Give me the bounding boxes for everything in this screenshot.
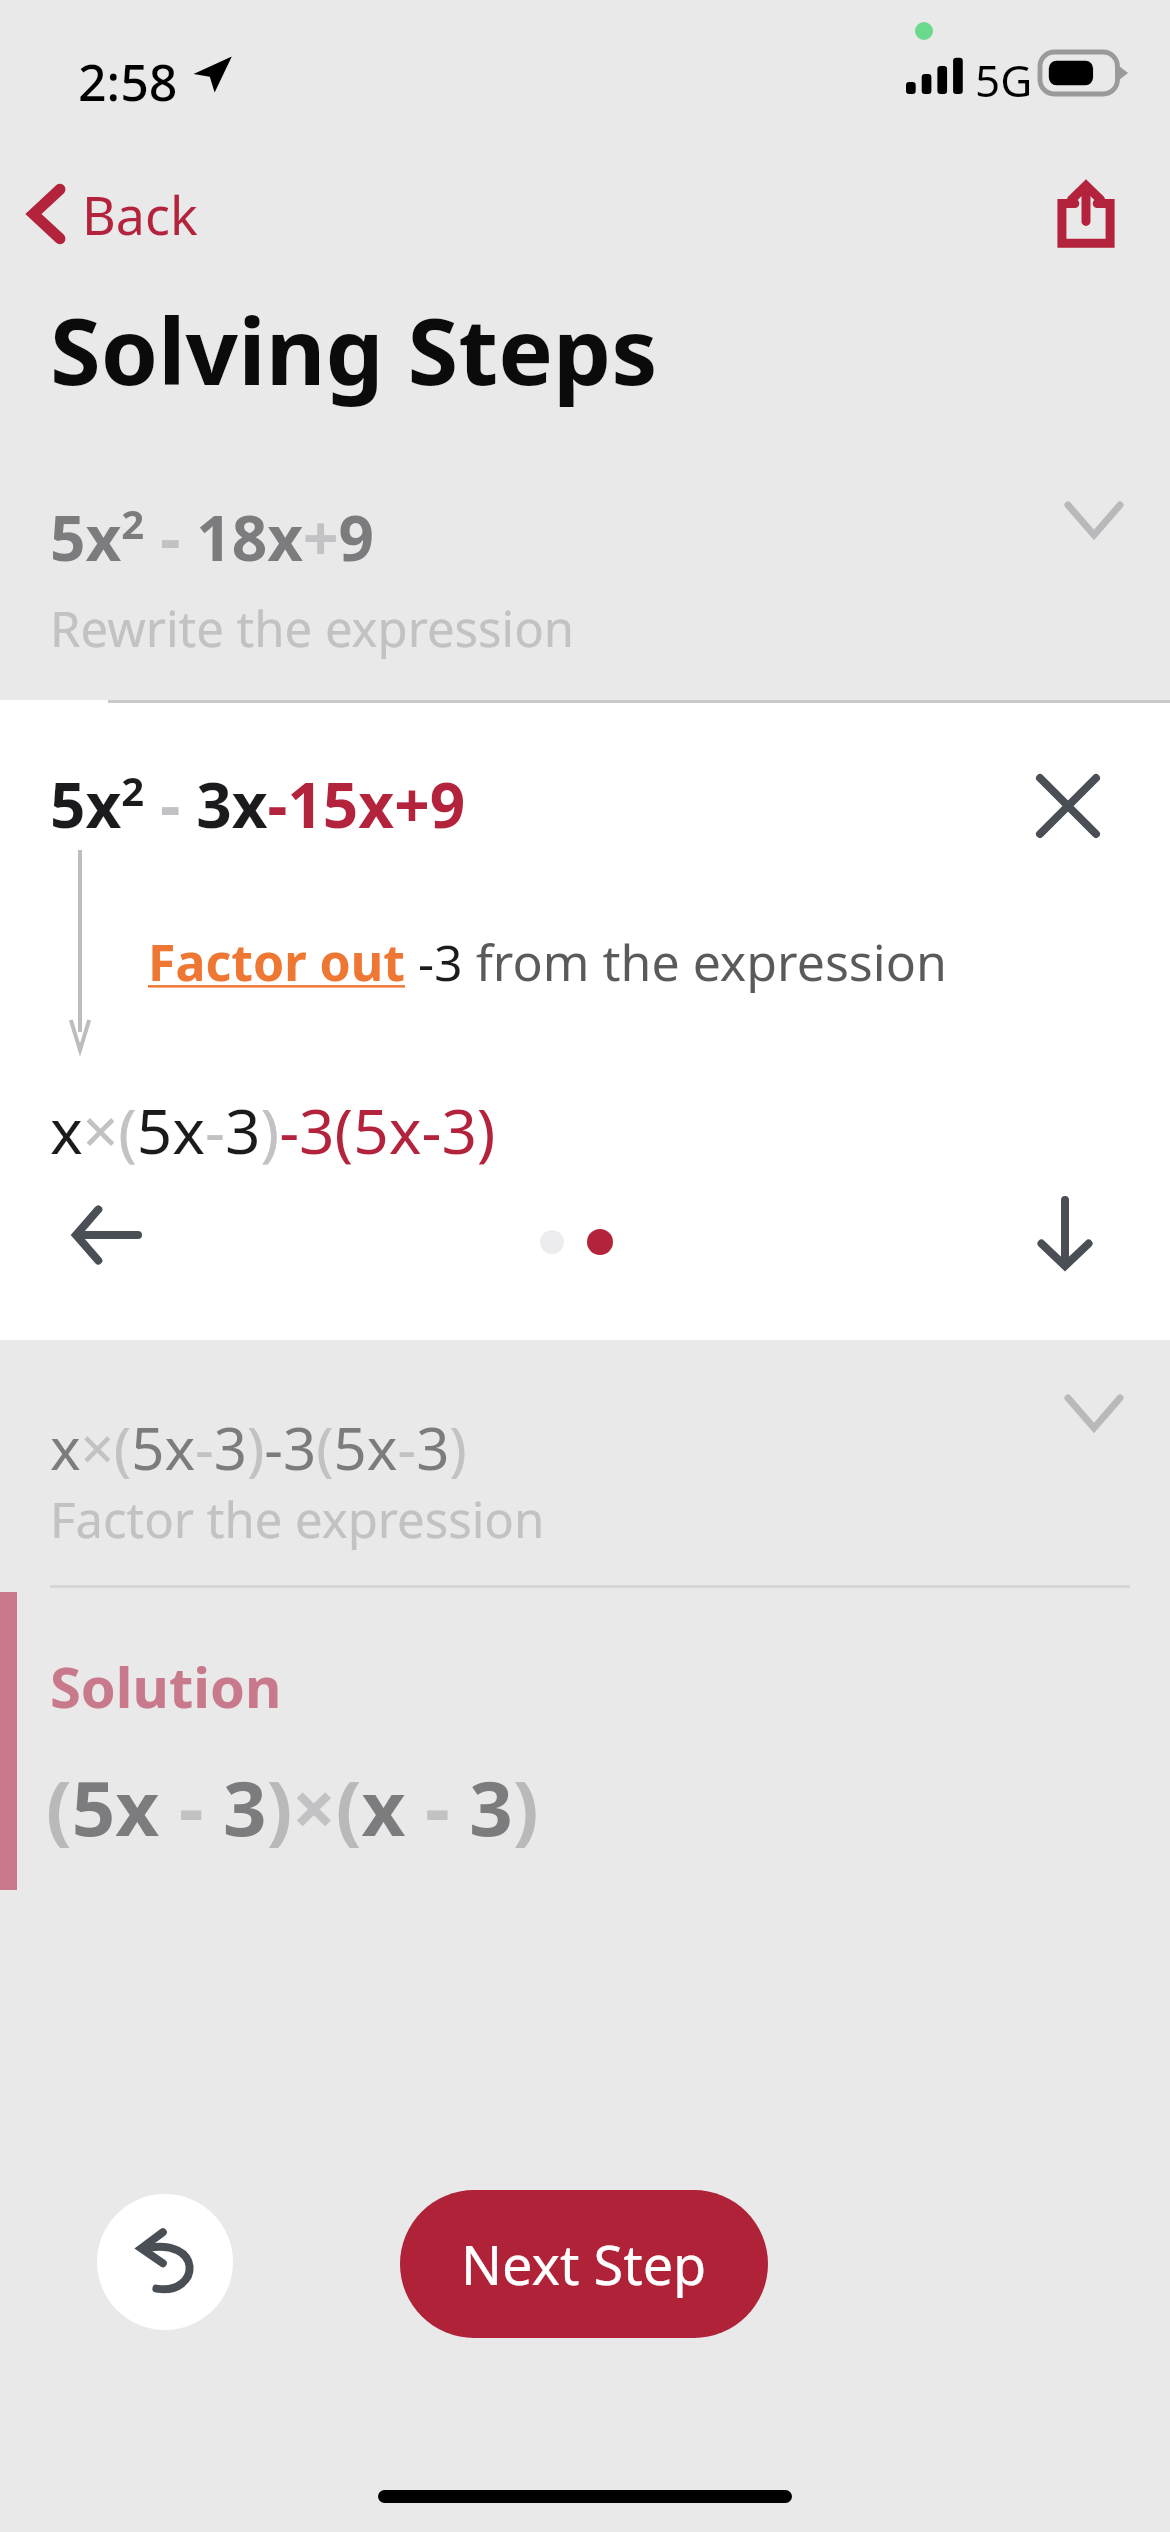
button[interactable]: Previous bbox=[52, 1180, 162, 1290]
button[interactable]: Undo bbox=[97, 2194, 233, 2330]
staticText: Solution bbox=[50, 1648, 282, 1724]
staticText: 5x2 - 18x+9 bbox=[50, 495, 374, 579]
staticText: Back bbox=[82, 179, 198, 250]
staticText: Rewrite the expression bbox=[50, 595, 575, 662]
staticText: Solving Steps bbox=[50, 287, 658, 412]
staticText: (5x - 3)×(x - 3) bbox=[46, 1755, 539, 1859]
button[interactable]: Back bbox=[30, 168, 198, 260]
button[interactable]: Share bbox=[1040, 168, 1132, 260]
button[interactable]: Next bbox=[1010, 1178, 1120, 1288]
button[interactable]: x×(5x-3)-3(5x-3) bbox=[0, 1340, 1170, 1580]
staticText: x×(5x-3)-3(5x-3) bbox=[50, 1408, 467, 1487]
button[interactable]: Next Step bbox=[400, 2190, 768, 2338]
staticText: 5x2 - 3x-15x+9 bbox=[50, 762, 466, 846]
staticText: x×(5x-3)-3(5x-3) bbox=[50, 1088, 496, 1172]
staticText: 2:58 bbox=[78, 48, 178, 116]
staticText: Factor the expression bbox=[50, 1486, 545, 1553]
staticText: Factor out -3 from the expression bbox=[148, 928, 947, 996]
button[interactable]: 5x2 - 18x+9 bbox=[0, 465, 1170, 702]
staticText: Next Step bbox=[461, 2227, 707, 2301]
staticText: 5G bbox=[975, 50, 1033, 110]
button[interactable]: Close bbox=[1020, 758, 1116, 854]
